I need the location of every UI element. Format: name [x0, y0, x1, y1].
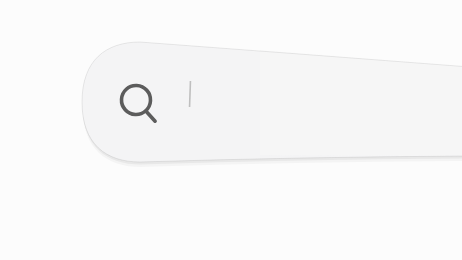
button[interactable]: Search: [0, 0, 462, 260]
